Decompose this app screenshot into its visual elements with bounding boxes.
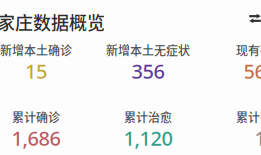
button[interactable]: Switch data source bbox=[243, 6, 261, 30]
staticText: 356 bbox=[131, 58, 164, 84]
staticText: 累计治愈 bbox=[124, 108, 172, 126]
staticText: 累计确诊 bbox=[12, 108, 60, 126]
staticText: 累计死亡 bbox=[236, 108, 261, 126]
staticText: 新增本土确诊 bbox=[0, 41, 72, 59]
staticText: 现有确诊 bbox=[236, 41, 261, 59]
staticText: 新增本土无症状 bbox=[106, 41, 190, 59]
staticText: 15 bbox=[25, 58, 47, 84]
staticText: 家庄数据概览 bbox=[0, 9, 105, 35]
staticText: 563 bbox=[243, 58, 261, 84]
staticText: 1 bbox=[254, 125, 261, 151]
staticText: 1,120 bbox=[123, 125, 172, 151]
staticText: 1,686 bbox=[11, 125, 60, 151]
